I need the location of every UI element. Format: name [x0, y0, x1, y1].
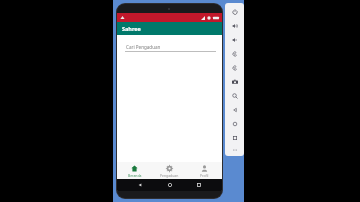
button[interactable]: Sahree: [117, 22, 222, 35]
staticText: Pengaduan: [160, 173, 179, 178]
button[interactable]: Volume up: [229, 20, 240, 31]
button[interactable]: Zoom: [229, 90, 240, 101]
button[interactable]: Rotate right: [229, 62, 240, 73]
button[interactable]: Take screenshot: [229, 76, 240, 87]
button[interactable]: Back: [134, 179, 146, 191]
staticText: Beranda: [128, 173, 142, 178]
staticText: Cari Pengaduan: [126, 44, 161, 50]
staticText: Profil: [200, 173, 209, 178]
button[interactable]: Recent apps: [193, 179, 205, 191]
staticText: Sahree: [122, 25, 141, 32]
button[interactable]: Volume down: [229, 34, 240, 45]
button[interactable]: Home: [164, 179, 176, 191]
button[interactable]: Profil: [187, 162, 222, 179]
button[interactable]: Pengaduan: [152, 162, 187, 179]
button[interactable]: Power: [229, 6, 240, 17]
button[interactable]: Overview: [229, 132, 240, 143]
button[interactable]: Cari Pengaduan: [125, 44, 216, 52]
button[interactable]: Rotate left: [229, 48, 240, 59]
button[interactable]: Back: [229, 104, 240, 115]
button[interactable]: Home: [229, 118, 240, 129]
button[interactable]: More: [229, 146, 240, 153]
button[interactable]: Beranda: [117, 162, 152, 179]
